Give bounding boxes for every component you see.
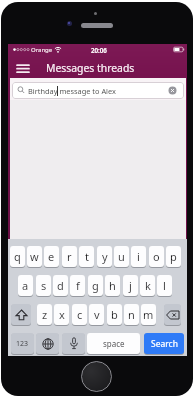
staticText: n [128, 307, 135, 322]
staticText: 123 [16, 339, 29, 349]
button[interactable]: v [89, 304, 104, 325]
staticText: v [94, 307, 100, 322]
button[interactable] [17, 64, 29, 74]
staticText: b [111, 307, 118, 322]
staticText: j [129, 278, 132, 293]
staticText: p [170, 249, 177, 264]
button[interactable]: m [141, 304, 156, 325]
staticText: a [22, 278, 29, 293]
button[interactable]: d [53, 275, 68, 296]
staticText: w [30, 249, 39, 264]
staticText: u [118, 249, 125, 264]
button[interactable] [81, 361, 112, 392]
button[interactable]: a [18, 275, 33, 296]
staticText: l [163, 278, 166, 293]
button[interactable]: 123 [11, 333, 34, 354]
button[interactable]: t [79, 246, 94, 267]
staticText: e [48, 249, 55, 264]
button[interactable]: Search [144, 333, 184, 354]
button[interactable] [62, 333, 85, 354]
staticText: q [14, 249, 21, 264]
staticText: g [92, 278, 99, 293]
button[interactable]: b [107, 304, 122, 325]
button[interactable] [36, 333, 59, 354]
button[interactable]: n [124, 304, 139, 325]
staticText: c [77, 307, 83, 322]
button[interactable]: g [88, 275, 103, 296]
button[interactable]: s [36, 275, 51, 296]
staticText: o [153, 249, 160, 264]
button[interactable]: h [105, 275, 120, 296]
staticText: Search [151, 338, 178, 350]
button[interactable]: q [10, 246, 25, 267]
staticText: i [137, 249, 140, 264]
staticText: Orange [31, 46, 53, 54]
button[interactable]: k [140, 275, 155, 296]
button[interactable]: i [131, 246, 146, 267]
staticText: x [59, 307, 65, 322]
button[interactable]: space [87, 333, 140, 354]
button[interactable]: u [114, 246, 129, 267]
button[interactable]: y [97, 246, 112, 267]
staticText: h [109, 278, 116, 293]
button[interactable]: p [166, 246, 181, 267]
button[interactable]: w [27, 246, 42, 267]
button[interactable]: o [149, 246, 164, 267]
button[interactable]: c [72, 304, 87, 325]
staticText: z [42, 307, 48, 322]
button[interactable]: f [70, 275, 85, 296]
staticText: 20:06 [91, 46, 107, 54]
staticText: s [41, 278, 47, 293]
button[interactable] [11, 304, 31, 325]
button[interactable] [164, 304, 181, 325]
staticText: r [67, 249, 72, 264]
staticText: f [76, 278, 80, 293]
staticText: Messages threads [46, 61, 135, 75]
staticText: y [102, 249, 108, 264]
button[interactable]: j [123, 275, 138, 296]
staticText: t [85, 249, 89, 264]
button[interactable]: z [37, 304, 52, 325]
button[interactable]: l [157, 275, 172, 296]
button[interactable]: r [62, 246, 77, 267]
staticText: k [145, 278, 151, 293]
staticText: m [143, 307, 154, 322]
button[interactable]: e [44, 246, 59, 267]
staticText: space [103, 338, 125, 349]
staticText: Birthday message to Alex [28, 86, 116, 96]
button[interactable]: x [54, 304, 69, 325]
staticText: d [57, 278, 64, 293]
button[interactable]: Birthday message to Alex [12, 82, 184, 99]
